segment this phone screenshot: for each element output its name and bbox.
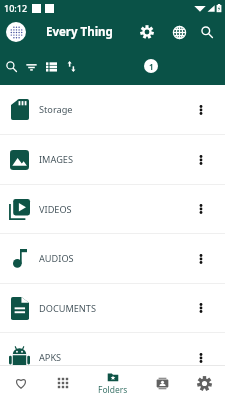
button[interactable]: Storage — [0, 85, 225, 134]
staticText: 10:12 — [4, 2, 28, 14]
staticText: AUDIOS — [39, 252, 74, 265]
button[interactable]: More options — [189, 197, 213, 221]
button[interactable]: More options — [189, 98, 213, 122]
button[interactable]: Change view — [41, 56, 61, 76]
button[interactable]: Settings — [183, 366, 225, 400]
staticText: DOCUMENTS — [39, 302, 96, 315]
button[interactable]: Settings — [134, 19, 160, 45]
button[interactable]: 1 — [144, 59, 158, 73]
button[interactable]: More options — [189, 247, 213, 271]
staticText: 1 — [149, 61, 154, 72]
button[interactable]: AUDIOS — [0, 234, 225, 283]
staticText: VIDEOS — [39, 203, 72, 216]
button[interactable]: App logo — [6, 22, 26, 42]
button[interactable]: Search — [1, 56, 21, 76]
button[interactable]: IMAGES — [0, 135, 225, 184]
staticText: IMAGES — [39, 153, 73, 166]
staticText: Every Thing — [46, 24, 113, 40]
staticText: Folders — [98, 384, 128, 396]
button[interactable]: APKS — [0, 333, 225, 382]
button[interactable]: More options — [189, 296, 213, 320]
button[interactable]: Sort — [61, 56, 81, 76]
button[interactable]: Favorites — [0, 366, 42, 400]
button[interactable]: Language — [166, 19, 192, 45]
button[interactable]: Search — [194, 19, 220, 45]
button[interactable]: Contacts — [141, 366, 183, 400]
button[interactable]: Folders — [84, 366, 141, 400]
staticText: Storage — [39, 103, 73, 116]
button[interactable]: Filter — [21, 56, 41, 76]
button[interactable]: DOCUMENTS — [0, 284, 225, 332]
button[interactable]: More options — [189, 346, 213, 370]
staticText: APKS — [39, 351, 62, 364]
button[interactable]: Apps — [42, 366, 84, 400]
button[interactable]: VIDEOS — [0, 185, 225, 233]
button[interactable]: More options — [189, 148, 213, 172]
